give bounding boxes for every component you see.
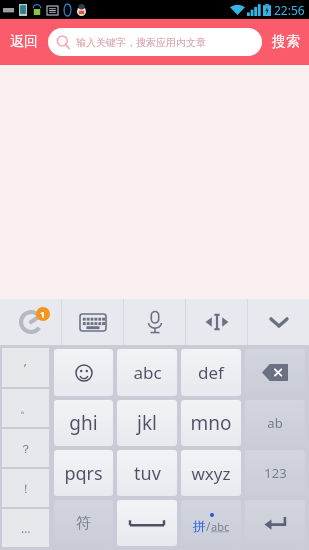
button[interactable]: Enter — [245, 500, 305, 546]
staticText: ghi — [69, 410, 98, 436]
button[interactable]: abc — [117, 349, 177, 396]
button[interactable]: … — [2, 509, 49, 547]
staticText: / — [206, 518, 211, 534]
staticText: mno — [190, 410, 232, 436]
staticText: wxyz — [191, 462, 231, 485]
button[interactable]: ！ — [2, 469, 49, 507]
staticText: 输入关键字，搜索应用内文章 — [76, 36, 206, 49]
button[interactable]: Space — [117, 500, 177, 546]
staticText: ab — [267, 414, 283, 432]
staticText: abc — [211, 519, 230, 534]
button[interactable]: 输入关键字，搜索应用内文章 — [48, 28, 262, 56]
button[interactable]: 搜索 — [262, 19, 309, 65]
button[interactable]: Voice input — [124, 299, 185, 345]
staticText: jkl — [137, 410, 157, 436]
staticText: ！ — [20, 481, 32, 496]
button[interactable]: 123 — [245, 450, 305, 496]
button[interactable]: pqrs — [54, 450, 113, 496]
staticText: ？ — [20, 441, 32, 456]
staticText: … — [21, 520, 31, 536]
staticText: 返回 — [10, 33, 38, 51]
button[interactable]: Input method — [0, 299, 61, 345]
button[interactable]: 符 — [54, 500, 113, 546]
button[interactable]: wxyz — [181, 450, 241, 496]
button[interactable]: ’ — [2, 348, 49, 387]
button[interactable]: Move cursor — [186, 299, 247, 345]
button[interactable]: Hide keyboard — [248, 299, 309, 345]
button[interactable]: ab — [245, 400, 305, 446]
button[interactable]: 返回 — [0, 19, 48, 65]
staticText: pqrs — [64, 461, 103, 486]
staticText: 22:56 — [274, 2, 305, 18]
button[interactable]: def — [181, 349, 241, 396]
button[interactable]: ghi — [54, 400, 113, 446]
staticText: 123 — [264, 464, 287, 482]
button[interactable] — [54, 349, 113, 396]
staticText: abc — [133, 361, 162, 384]
staticText: 。 — [20, 401, 32, 416]
staticText: def — [198, 361, 224, 384]
button[interactable]: mno — [181, 400, 241, 446]
button[interactable]: 拼 — [181, 500, 241, 546]
button[interactable]: jkl — [117, 400, 177, 446]
button[interactable]: Keyboard layout — [62, 299, 123, 345]
staticText: 拼 — [193, 518, 206, 534]
staticText: tuv — [134, 461, 161, 486]
button[interactable]: Backspace — [245, 349, 305, 396]
staticText: ’ — [24, 360, 27, 376]
button[interactable]: tuv — [117, 450, 177, 496]
button[interactable]: ？ — [2, 429, 49, 467]
staticText: 符 — [76, 514, 91, 533]
staticText: 搜索 — [272, 33, 300, 51]
staticText: 1 — [40, 308, 46, 320]
